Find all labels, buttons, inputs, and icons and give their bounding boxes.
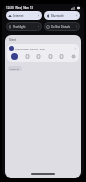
button[interactable]: App 1 <box>25 54 30 59</box>
other: Expand notification <box>74 47 77 50</box>
button[interactable]: Clear all <box>8 66 22 71</box>
button[interactable]: App 4 <box>59 54 64 59</box>
staticText: 12:30 Wed, Nov 13 <box>6 6 34 10</box>
button[interactable]: App 2 <box>36 54 41 59</box>
staticText: Silent <box>9 38 16 42</box>
staticText: Subscription Control · now <box>15 47 45 50</box>
button[interactable]: App 3 <box>48 54 53 59</box>
staticText: Flashlight <box>13 25 26 29</box>
staticText: Clear all <box>10 67 20 70</box>
staticText: Internet <box>13 14 24 18</box>
button[interactable]: Do Not Disturb <box>44 22 80 31</box>
button[interactable]: Flashlight <box>6 22 42 31</box>
staticText: Do Not Disturb <box>51 25 71 29</box>
button[interactable]: Settings <box>71 54 76 59</box>
button[interactable]: Bluetooth <box>44 11 80 20</box>
staticText: Bluetooth <box>51 14 64 18</box>
button[interactable]: Subscription Control · now <box>7 44 79 62</box>
button[interactable]: Current app <box>11 53 18 60</box>
button[interactable]: Internet <box>6 11 42 20</box>
